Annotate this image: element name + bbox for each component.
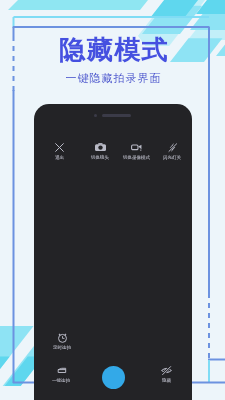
button[interactable]: 隐藏 xyxy=(142,365,190,384)
button[interactable]: 切换镜头 xyxy=(76,142,124,161)
button[interactable]: 一键连拍 xyxy=(37,365,85,384)
button[interactable]: 退出 xyxy=(35,142,83,161)
staticText: 一键隐藏拍录界面 xyxy=(65,71,161,85)
staticText: 退出 xyxy=(55,155,64,161)
staticText: 闪光灯关 xyxy=(163,155,181,161)
staticText: 定时连拍 xyxy=(53,345,71,351)
button[interactable]: 闪光灯关 xyxy=(148,142,192,161)
staticText: 隐藏模式 xyxy=(58,34,168,67)
staticText: 切换镜头 xyxy=(91,155,109,161)
button[interactable]: Shutter xyxy=(102,366,125,389)
staticText: 一键连拍 xyxy=(52,378,70,384)
staticText: 隐藏 xyxy=(162,378,171,384)
button[interactable]: 定时连拍 xyxy=(38,332,86,351)
staticText: 切换录像模式 xyxy=(123,155,150,161)
button[interactable]: 切换录像模式 xyxy=(112,142,160,161)
